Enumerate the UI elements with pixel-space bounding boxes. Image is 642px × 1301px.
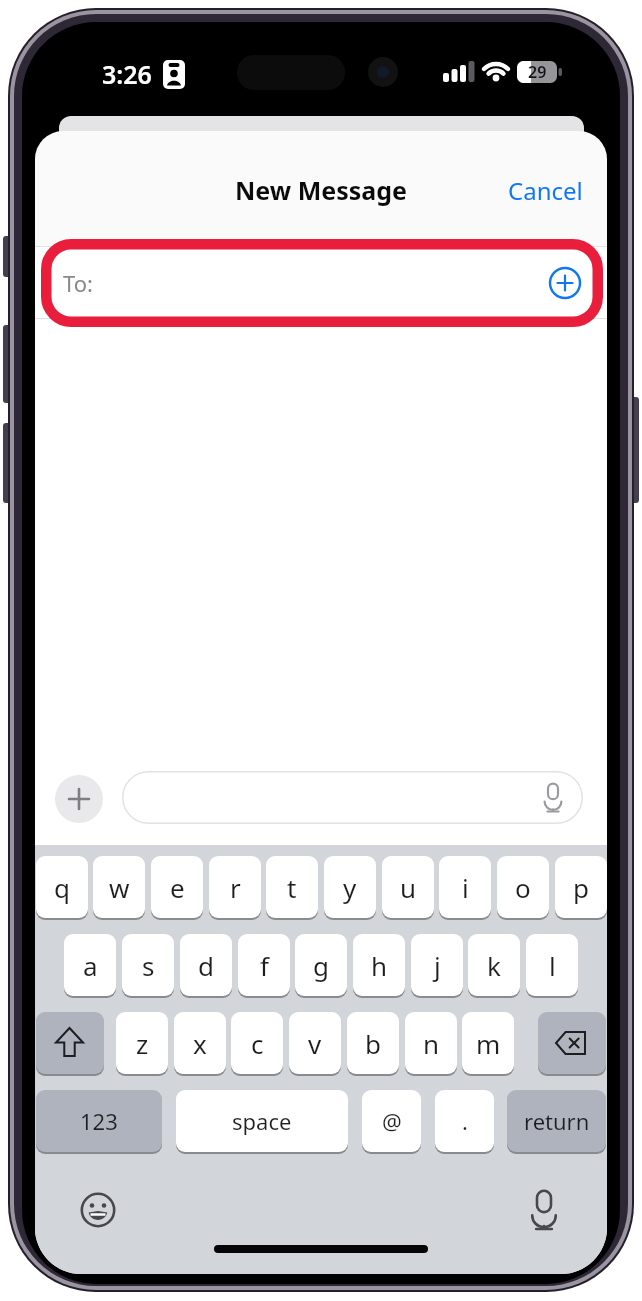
- button[interactable]: q: [36, 856, 88, 918]
- button[interactable]: y: [324, 856, 376, 918]
- staticText: c: [251, 1026, 264, 1061]
- button[interactable]: u: [382, 856, 434, 918]
- button[interactable]: d: [180, 934, 232, 996]
- button[interactable]: p: [555, 856, 607, 918]
- staticText: u: [400, 870, 417, 905]
- button[interactable]: w: [93, 856, 145, 918]
- staticText: f: [260, 948, 269, 983]
- button[interactable]: [35, 247, 607, 318]
- button[interactable]: k: [468, 934, 520, 996]
- button[interactable]: a: [64, 934, 116, 996]
- staticText: Cancel: [508, 174, 583, 207]
- staticText: m: [476, 1026, 501, 1061]
- staticText: g: [313, 948, 329, 983]
- button[interactable]: .: [435, 1090, 494, 1152]
- staticText: e: [170, 870, 185, 905]
- button[interactable]: [530, 1190, 558, 1231]
- button[interactable]: 123: [36, 1090, 162, 1152]
- button[interactable]: b: [347, 1012, 399, 1074]
- button[interactable]: @: [362, 1090, 421, 1152]
- staticText: space: [232, 1106, 292, 1136]
- staticText: z: [136, 1026, 149, 1061]
- staticText: r: [230, 870, 241, 905]
- button[interactable]: h: [353, 934, 405, 996]
- staticText: a: [83, 948, 98, 983]
- button[interactable]: c: [231, 1012, 283, 1074]
- staticText: l: [549, 948, 556, 983]
- button[interactable]: [55, 775, 103, 823]
- staticText: j: [434, 948, 441, 983]
- staticText: d: [198, 948, 214, 983]
- button[interactable]: i: [439, 856, 491, 918]
- staticText: b: [365, 1026, 381, 1061]
- staticText: 29: [528, 61, 547, 83]
- staticText: n: [423, 1026, 440, 1061]
- staticText: 123: [80, 1106, 118, 1136]
- button[interactable]: z: [116, 1012, 168, 1074]
- staticText: s: [142, 948, 155, 983]
- staticText: return: [524, 1106, 590, 1136]
- staticText: v: [308, 1026, 322, 1061]
- staticText: o: [515, 870, 531, 905]
- staticText: i: [462, 870, 469, 905]
- button[interactable]: [36, 1012, 104, 1074]
- button[interactable]: v: [289, 1012, 341, 1074]
- button[interactable]: [538, 1012, 606, 1074]
- button[interactable]: e: [151, 856, 203, 918]
- button[interactable]: Cancel: [500, 170, 583, 210]
- button[interactable]: r: [209, 856, 261, 918]
- staticText: To:: [63, 268, 93, 298]
- staticText: .: [462, 1106, 468, 1136]
- button[interactable]: n: [405, 1012, 457, 1074]
- button[interactable]: s: [122, 934, 174, 996]
- button[interactable]: x: [174, 1012, 226, 1074]
- staticText: h: [371, 948, 388, 983]
- button[interactable]: space: [176, 1090, 348, 1152]
- button[interactable]: l: [526, 934, 578, 996]
- staticText: q: [54, 870, 70, 905]
- staticText: p: [573, 870, 589, 905]
- button[interactable]: m: [462, 1012, 514, 1074]
- staticText: @: [382, 1106, 402, 1136]
- staticText: New Message: [235, 173, 407, 207]
- staticText: w: [109, 870, 130, 905]
- button[interactable]: o: [497, 856, 549, 918]
- staticText: t: [287, 870, 297, 905]
- button[interactable]: [549, 267, 581, 299]
- staticText: k: [487, 948, 501, 983]
- button[interactable]: [80, 1192, 116, 1228]
- button[interactable]: t: [266, 856, 318, 918]
- button[interactable]: g: [295, 934, 347, 996]
- staticText: x: [193, 1026, 207, 1061]
- staticText: 3:26: [102, 57, 152, 89]
- button[interactable]: [122, 771, 583, 824]
- button[interactable]: return: [507, 1090, 606, 1152]
- button[interactable]: f: [238, 934, 290, 996]
- button[interactable]: j: [411, 934, 463, 996]
- staticText: y: [343, 870, 357, 905]
